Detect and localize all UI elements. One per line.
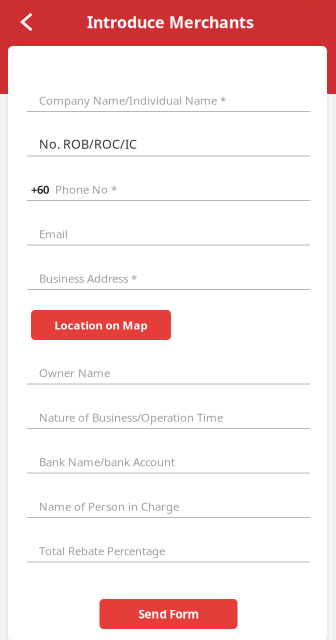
staticText: Business Address *	[39, 271, 137, 286]
staticText: Introduce Merchants	[87, 11, 254, 33]
staticText: Nature of Business/Operation Time	[39, 410, 223, 425]
button[interactable]: Location on Map	[31, 310, 171, 340]
button[interactable]: Send Form	[99, 599, 237, 629]
button[interactable]: Back	[5, 0, 49, 44]
staticText: Company Name/Individual Name *	[39, 93, 226, 108]
staticText: No. ROB/ROC/IC	[39, 135, 137, 152]
staticText: +60	[31, 182, 49, 197]
staticText: Total Rebate Percentage	[39, 543, 165, 558]
staticText: Email	[39, 226, 68, 241]
staticText: Send Form	[138, 606, 198, 622]
staticText: Location on Map	[54, 317, 147, 333]
staticText: Owner Name	[39, 365, 110, 380]
staticText: Bank Name/bank Account	[39, 454, 175, 469]
staticText: Phone No *	[55, 182, 117, 197]
staticText: Name of Person in Charge	[39, 499, 179, 514]
